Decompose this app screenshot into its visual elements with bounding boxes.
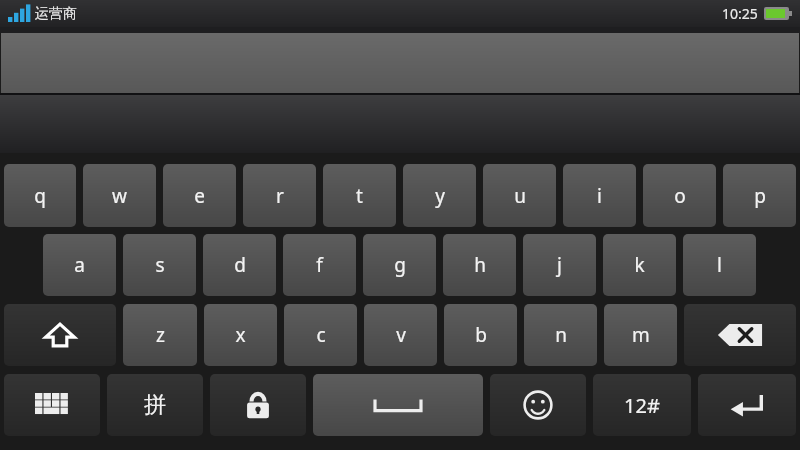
button[interactable]: l [683,234,756,296]
button[interactable]: s [123,234,196,296]
button[interactable]: p [723,164,796,227]
staticText: q [34,183,46,209]
staticText: k [634,252,645,278]
button[interactable] [1,33,799,93]
staticText: f [316,252,323,278]
staticText: a [74,252,85,278]
button[interactable]: z [123,304,197,366]
button[interactable]: g [363,234,436,296]
staticText: p [754,183,766,209]
button[interactable] [0,95,800,153]
button[interactable]: r [243,164,316,227]
button[interactable]: f [283,234,356,296]
staticText: n [555,322,567,348]
button[interactable]: e [163,164,236,227]
staticText: 10:25 [722,4,758,23]
staticText: g [394,252,406,278]
staticText: v [396,322,406,348]
button[interactable]: c [284,304,357,366]
staticText: e [194,183,205,209]
button[interactable]: n [524,304,597,366]
staticText: x [235,322,246,348]
button[interactable]: Enter [698,374,796,436]
button[interactable]: a [43,234,116,296]
staticText: 拼 [144,391,166,419]
button[interactable]: u [483,164,556,227]
button[interactable]: Space [313,374,483,436]
button[interactable]: v [364,304,437,366]
staticText: 12# [624,392,660,419]
staticText: t [356,183,363,209]
staticText: r [276,183,284,209]
button[interactable]: 拼 [107,374,203,436]
staticText: b [475,322,487,348]
button[interactable]: Shift [4,304,116,366]
staticText: w [112,183,127,209]
button[interactable]: Backspace [684,304,796,366]
button[interactable]: Switch keyboard [4,374,100,436]
staticText: z [156,322,165,348]
button[interactable]: m [604,304,677,366]
staticText: o [674,183,686,209]
button[interactable]: h [443,234,516,296]
button[interactable]: i [563,164,636,227]
button[interactable]: y [403,164,476,227]
staticText: j [557,252,562,278]
button[interactable]: j [523,234,596,296]
staticText: c [316,322,326,348]
button[interactable]: d [203,234,276,296]
staticText: d [234,252,246,278]
staticText: 运营商 [35,5,77,23]
staticText: s [155,252,165,278]
button[interactable]: Emoji [490,374,586,436]
staticText: l [717,252,722,278]
button[interactable]: b [444,304,517,366]
staticText: i [597,183,602,209]
button[interactable]: t [323,164,396,227]
button[interactable]: Lock [210,374,306,436]
button[interactable]: o [643,164,716,227]
staticText: y [435,183,445,209]
staticText: u [514,183,526,209]
staticText: h [474,252,486,278]
button[interactable]: q [4,164,76,227]
button[interactable]: k [603,234,676,296]
button[interactable]: 12# [593,374,691,436]
staticText: m [632,322,650,348]
button[interactable]: x [204,304,277,366]
button[interactable]: w [83,164,156,227]
